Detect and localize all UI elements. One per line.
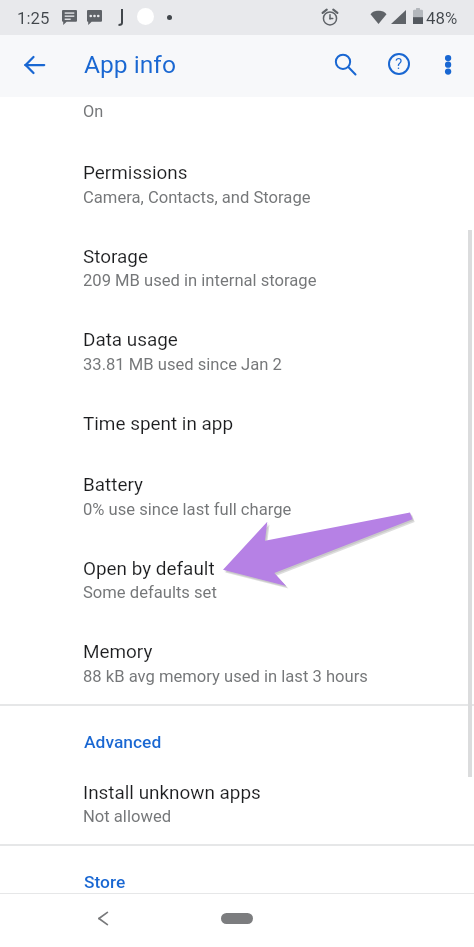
staticText: Install unknown apps: [83, 781, 261, 803]
staticText: 33.81 MB used since Jan 2: [83, 355, 282, 374]
button[interactable]: [0, 398, 474, 442]
button[interactable]: [0, 231, 474, 289]
button[interactable]: Navigate up: [8, 43, 54, 89]
button[interactable]: Home: [221, 913, 253, 924]
staticText: Time spent in app: [83, 412, 234, 434]
staticText: Battery: [83, 473, 143, 495]
button[interactable]: [0, 626, 474, 684]
staticText: Not allowed: [83, 807, 172, 826]
staticText: Some defaults set: [83, 583, 217, 602]
button[interactable]: [0, 459, 474, 517]
button[interactable]: Search: [321, 39, 366, 84]
staticText: 1:25: [17, 8, 50, 28]
button[interactable]: [0, 314, 474, 372]
staticText: 48%: [426, 8, 458, 28]
staticText: 209 MB used in internal storage: [83, 271, 317, 290]
staticText: 0% use since last full charge: [83, 500, 292, 519]
button[interactable]: More options: [426, 42, 470, 86]
staticText: App info: [84, 50, 176, 79]
staticText: Permissions: [83, 161, 188, 183]
button[interactable]: Back: [85, 900, 121, 936]
staticText: Open by default: [83, 557, 215, 579]
button[interactable]: Advanced: [0, 0, 78, 20]
staticText: On: [83, 102, 104, 121]
staticText: Storage: [83, 245, 148, 267]
button[interactable]: [0, 543, 474, 601]
button[interactable]: Store: [0, 0, 42, 20]
button[interactable]: [0, 767, 474, 825]
staticText: Memory: [83, 640, 153, 662]
button[interactable]: [0, 147, 474, 205]
staticText: Data usage: [83, 328, 178, 350]
button[interactable]: [0, 88, 474, 132]
button[interactable]: Help: [377, 42, 421, 86]
staticText: ?: [395, 55, 403, 73]
staticText: Camera, Contacts, and Storage: [83, 188, 311, 207]
staticText: 88 kB avg memory used in last 3 hours: [83, 667, 368, 686]
